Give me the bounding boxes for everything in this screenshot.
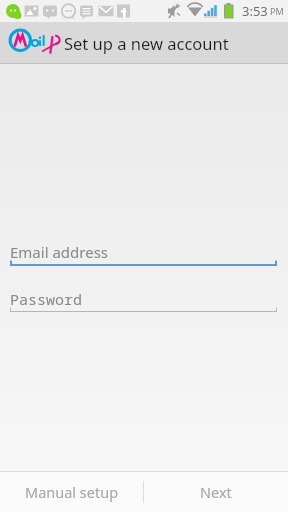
staticText: Email address xyxy=(10,242,109,262)
staticText: 3:53 xyxy=(242,2,268,20)
button[interactable]: Next xyxy=(144,472,288,512)
staticText: Password xyxy=(10,289,83,309)
staticText: Set up a new account xyxy=(64,32,229,54)
other: MailP app logo xyxy=(6,26,60,60)
staticText: PM xyxy=(270,5,284,17)
staticText: Manual setup xyxy=(25,482,119,502)
button[interactable]: Manual setup xyxy=(0,472,143,512)
button[interactable]: Email address xyxy=(10,239,277,270)
button[interactable]: Password xyxy=(10,286,277,317)
staticText: Next xyxy=(200,482,232,502)
